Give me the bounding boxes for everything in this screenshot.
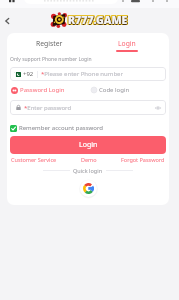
staticText: R777.GAME bbox=[69, 12, 129, 26]
staticText: R777.GAME bbox=[68, 13, 128, 27]
staticText: Only support Phone number Login bbox=[10, 56, 92, 63]
staticText: R777.GAME bbox=[69, 14, 129, 28]
staticText: *Enter password bbox=[24, 104, 72, 112]
staticText: R777.GAME bbox=[68, 12, 128, 26]
button[interactable]: +92 bbox=[10, 67, 166, 81]
staticText: R777.GAME bbox=[68, 14, 128, 28]
button[interactable]: Customer Service bbox=[11, 156, 57, 163]
staticText: Demo bbox=[81, 156, 97, 163]
button[interactable]: Login bbox=[10, 136, 166, 154]
staticText: Forgot Password bbox=[121, 156, 165, 163]
button[interactable]: Password Login bbox=[11, 86, 65, 94]
button[interactable]: Remember account password bbox=[10, 124, 103, 132]
staticText: Remember account password bbox=[19, 124, 103, 132]
button[interactable]: *Enter password bbox=[10, 100, 166, 115]
button[interactable]: Show password bbox=[154, 104, 162, 112]
staticText: Quick login bbox=[73, 167, 103, 174]
button[interactable]: Sign in with Google bbox=[80, 180, 97, 197]
button[interactable]: Back bbox=[1, 15, 13, 27]
staticText: *Please enter Phone number bbox=[41, 70, 123, 78]
staticText: R777.GAME bbox=[69, 13, 129, 27]
button[interactable]: Login bbox=[88, 36, 166, 55]
staticText: +92 bbox=[23, 70, 34, 78]
staticText: Code login bbox=[99, 86, 130, 94]
staticText: R777.GAME bbox=[67, 13, 127, 27]
button[interactable]: Code login bbox=[91, 86, 166, 94]
button[interactable]: Register bbox=[10, 36, 88, 55]
staticText: R777.GAME bbox=[68, 13, 128, 27]
staticText: Customer Service bbox=[11, 156, 57, 163]
button[interactable]: Demo bbox=[81, 156, 97, 163]
staticText: Login bbox=[118, 39, 136, 48]
staticText: R777.GAME bbox=[69, 13, 129, 27]
staticText: R777.GAME bbox=[67, 12, 127, 26]
button[interactable]: Forgot Password bbox=[121, 156, 165, 163]
staticText: R777.GAME bbox=[68, 14, 128, 28]
staticText: Password Login bbox=[20, 86, 65, 94]
staticText: Login bbox=[79, 140, 98, 150]
staticText: Register bbox=[36, 39, 63, 48]
staticText: R777.GAME bbox=[68, 13, 128, 27]
staticText: R777.GAME bbox=[67, 14, 127, 28]
